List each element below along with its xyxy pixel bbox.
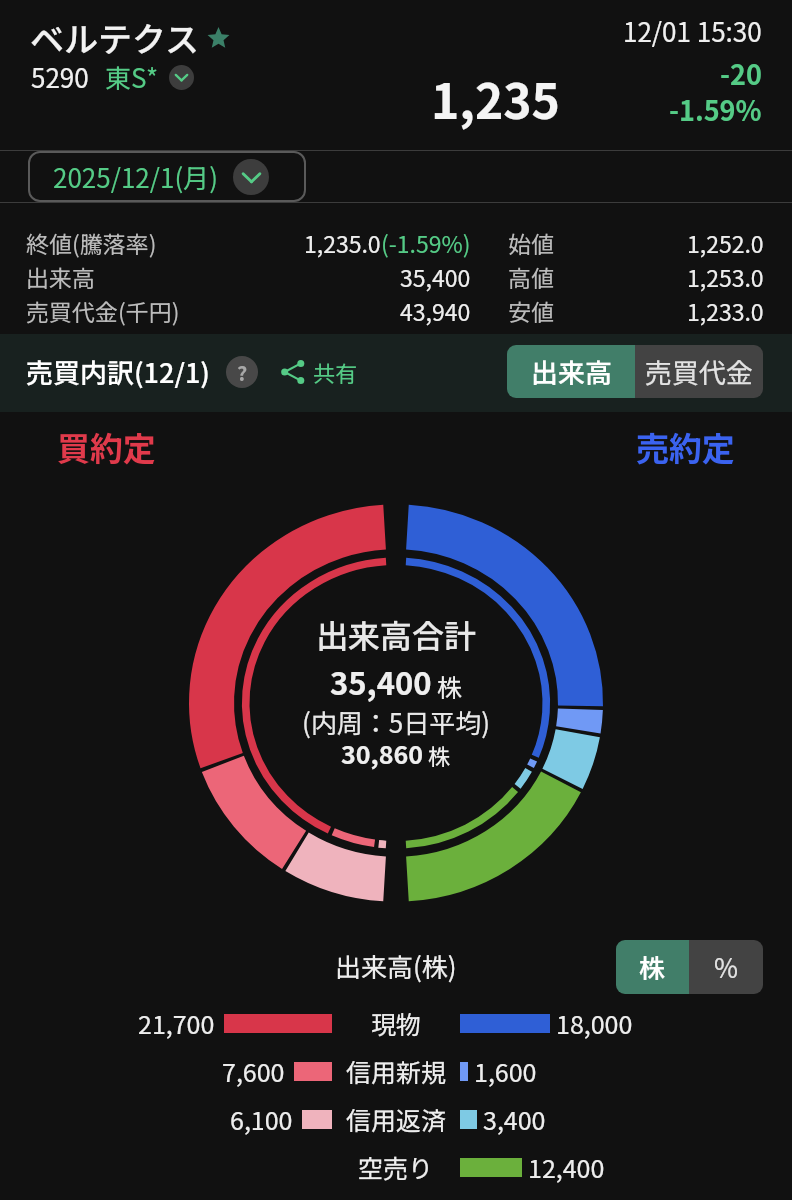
staticText: 5290 xyxy=(31,58,89,96)
staticText: 1,235 xyxy=(431,63,560,133)
staticText: 21,700 xyxy=(138,1005,215,1041)
staticText: ベルテクス xyxy=(30,13,199,62)
staticText: 現物 xyxy=(371,1005,422,1041)
staticText: 株 xyxy=(428,739,451,771)
staticText: 出来高 xyxy=(531,352,612,391)
staticText: 1,252.0 xyxy=(687,226,764,259)
staticText: ? xyxy=(237,358,248,387)
staticText: 7,600 xyxy=(222,1053,285,1089)
staticText: 高値 xyxy=(508,260,554,293)
staticText: -1.59% xyxy=(669,90,762,129)
staticText: 出来高(株) xyxy=(335,947,457,985)
staticText: (-1.59%) xyxy=(381,226,471,259)
staticText: 信用新規 xyxy=(346,1053,447,1089)
button[interactable]: 株 xyxy=(616,940,689,994)
staticText: 出来高合計 xyxy=(316,611,477,657)
staticText: 出来高 xyxy=(26,260,95,293)
staticText: 43,940 xyxy=(400,294,471,327)
staticText: 共有 xyxy=(313,356,358,388)
button[interactable]: Market select xyxy=(169,65,194,90)
button[interactable]: 売買代金 xyxy=(635,345,763,398)
staticText: 18,000 xyxy=(556,1005,633,1041)
staticText: 株 xyxy=(639,948,666,986)
staticText: 12/01 15:30 xyxy=(623,12,762,50)
staticText: 買約定 xyxy=(57,423,156,471)
staticText: % xyxy=(714,948,738,986)
staticText: 35,400 xyxy=(330,659,432,704)
staticText: 2025/12/1(月) xyxy=(53,158,218,196)
staticText: 1,600 xyxy=(474,1053,537,1089)
staticText: 売買代金(千円) xyxy=(26,294,180,327)
staticText: 信用返済 xyxy=(346,1101,447,1137)
staticText: -20 xyxy=(720,54,762,93)
button[interactable]: 2025/12/1(月) xyxy=(28,151,306,202)
staticText: 1,235.0 xyxy=(304,226,381,259)
button[interactable]: Help xyxy=(226,356,258,388)
staticText: 終値(騰落率) xyxy=(26,226,157,259)
staticText: 12,400 xyxy=(528,1149,605,1185)
staticText: 東S* xyxy=(105,58,159,96)
staticText: (内周：5日平均) xyxy=(302,703,491,741)
staticText: 売買代金 xyxy=(645,352,753,391)
button[interactable]: 出来高 xyxy=(507,345,635,398)
staticText: 安値 xyxy=(508,294,554,327)
staticText: 1,253.0 xyxy=(687,260,764,293)
staticText: 始値 xyxy=(508,226,554,259)
staticText: 6,100 xyxy=(230,1101,293,1137)
other: Share xyxy=(280,359,306,385)
button[interactable]: Share xyxy=(280,356,358,388)
staticText: 売約定 xyxy=(636,423,735,471)
staticText: 35,400 xyxy=(400,260,471,293)
staticText: 株 xyxy=(437,668,463,704)
staticText: 30,860 xyxy=(341,735,423,771)
staticText: 3,400 xyxy=(483,1101,546,1137)
staticText: 売買内訳(12/1) xyxy=(26,352,210,391)
staticText: 空売り xyxy=(358,1149,434,1185)
staticText: 1,233.0 xyxy=(687,294,764,327)
button[interactable]: % xyxy=(689,940,763,994)
